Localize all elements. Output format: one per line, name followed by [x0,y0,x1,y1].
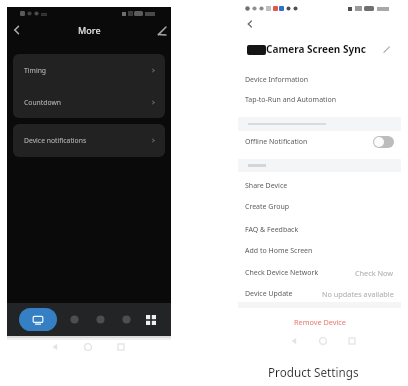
button[interactable]: Devices [19,308,57,331]
button[interactable]: Tap-to-Run and Automation [238,89,401,110]
button[interactable]: Timing [13,54,165,86]
button[interactable]: Add to Home Screen [238,240,401,261]
staticText: Offline Notification [245,137,308,147]
staticText: Add to Home Screen [245,246,313,256]
staticText: Share Device [245,181,288,191]
button[interactable]: Mall [119,312,134,327]
staticText: Check Now [355,268,394,278]
button[interactable]: Back [243,17,257,31]
button[interactable]: Me [143,312,158,327]
button[interactable]: Recents [116,342,126,352]
button[interactable]: FAQ & Feedback [238,219,401,240]
staticText: Tap-to-Run and Automation [245,95,336,105]
staticText: Device Information [245,75,309,85]
button[interactable]: Edit [153,22,171,40]
button[interactable]: Scenes [67,312,82,327]
button[interactable]: Device Update [238,283,401,304]
staticText: No updates available [322,289,394,299]
button[interactable]: Check Device Network [238,262,401,283]
button[interactable]: Device notifications [13,124,165,157]
button[interactable]: Home [318,336,328,346]
button[interactable]: Offline Notification [238,130,401,154]
staticText: Remove Device [294,317,346,327]
staticText: Product Settings [268,364,359,380]
button[interactable]: Back [289,336,299,346]
staticText: Check Device Network [245,268,319,278]
button[interactable]: Create Group [238,196,401,217]
staticText: Device Update [245,289,293,299]
button[interactable]: Countdown [13,86,165,118]
staticText: Device notifications [24,136,87,145]
staticText: More [78,24,101,36]
staticText: Timing [24,66,47,75]
button[interactable]: Smart [93,312,108,327]
staticText: FAQ & Feedback [245,225,299,235]
button[interactable]: Share Device [238,175,401,196]
staticText: Countdown [24,98,61,107]
button[interactable]: Recents [347,336,357,346]
staticText: Camera Screen Sync [266,42,366,56]
button[interactable]: Home [83,342,93,352]
button[interactable]: Remove Device [238,313,401,331]
button[interactable]: Device Information [238,69,401,90]
button[interactable]: Back [8,21,26,39]
button[interactable]: Back [50,342,60,352]
staticText: Create Group [245,202,290,212]
button[interactable]: Rename [380,43,393,56]
